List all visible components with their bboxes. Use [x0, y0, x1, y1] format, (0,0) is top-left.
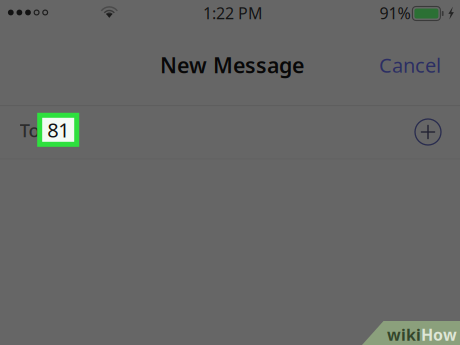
staticText: 1:22 PM: [203, 2, 263, 24]
button[interactable]: To, recipient field, 81: [0, 106, 392, 158]
staticText: To:: [19, 118, 44, 142]
staticText: New Message: [160, 51, 304, 79]
staticText: 91%: [379, 2, 410, 24]
staticText: 81: [47, 116, 69, 143]
button[interactable]: Cancel: [367, 42, 453, 88]
staticText: How: [421, 324, 457, 345]
staticText: wiki: [387, 324, 421, 345]
staticText: Cancel: [379, 52, 441, 78]
button[interactable]: Add contact: [407, 111, 449, 153]
